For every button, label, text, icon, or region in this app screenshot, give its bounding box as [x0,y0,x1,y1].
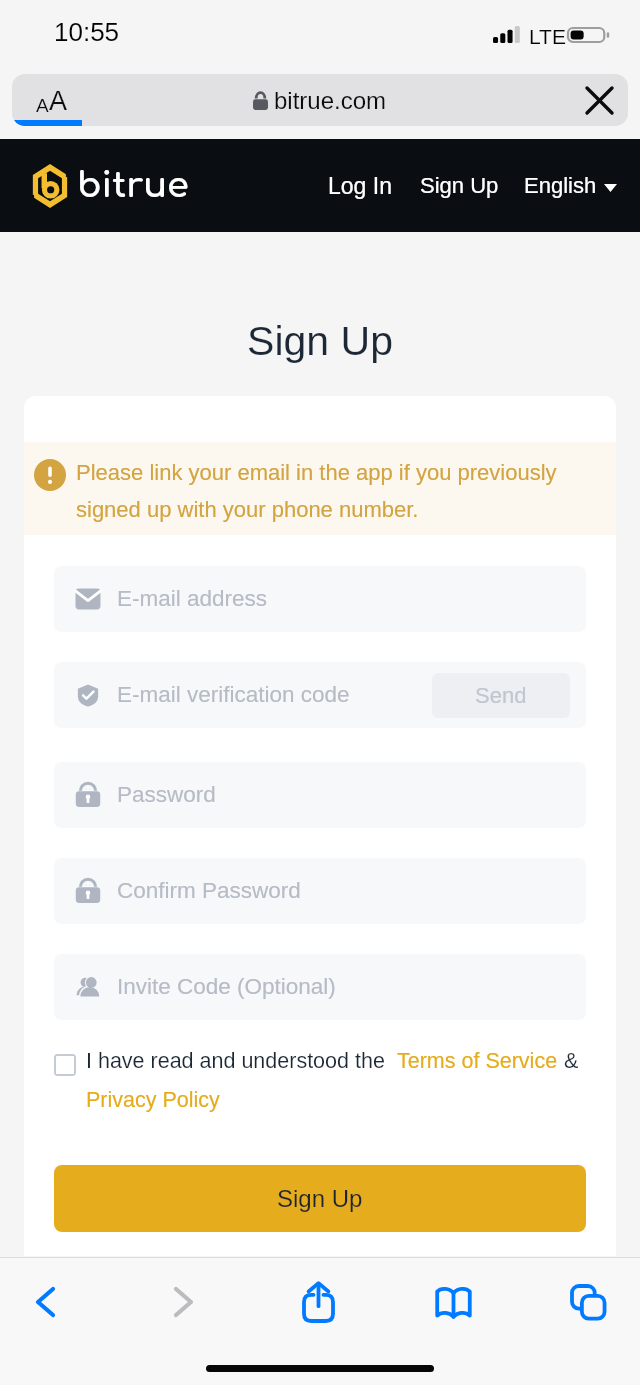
staticText: A [49,86,68,116]
button[interactable]: Confirm Password [54,858,586,924]
staticText: Terms of Service [397,1049,558,1073]
button[interactable]: Back [1,1262,89,1342]
staticText: Log In [328,173,392,199]
button[interactable]: English [514,161,627,210]
button[interactable]: A [12,74,628,126]
button[interactable]: Forward [139,1262,227,1342]
staticText: English [524,173,597,198]
button[interactable]: Bookmarks [409,1262,497,1342]
button[interactable]: Share [274,1262,362,1342]
staticText: & [564,1049,579,1073]
staticText: Privacy Policy [86,1088,220,1112]
button[interactable]: Send [432,673,570,718]
button[interactable]: Tabs [544,1262,632,1342]
staticText: I have read and understood the [86,1049,385,1073]
staticText: A [36,95,49,116]
button[interactable]: Password [54,762,586,828]
button[interactable]: Stop loading [570,74,628,126]
button[interactable]: E-mail address [54,566,586,632]
staticText: 10:55 [54,17,120,46]
staticText: Please link your email in the app if you… [76,460,586,521]
staticText: Password [117,782,216,807]
staticText: Confirm Password [117,878,301,903]
staticText: E-mail verification code [117,682,350,707]
staticText: Invite Code (Optional) [117,974,336,999]
button[interactable]: Agree to terms [54,1054,76,1076]
staticText: Sign Up [277,1185,363,1212]
staticText: Send [475,683,527,708]
staticText: LTE [529,25,566,48]
staticText: bitrue.com [274,87,387,114]
staticText: Sign Up [420,173,499,198]
button[interactable]: Log In [318,161,402,211]
staticText: Sign Up [0,318,640,364]
staticText: E-mail address [117,586,268,611]
staticText: bitrue [77,166,189,205]
button[interactable]: Privacy Policy [86,1088,220,1112]
button[interactable]: Sign Up [410,161,509,210]
button[interactable]: E-mail verification code [54,662,586,728]
button[interactable]: Sign Up [54,1165,586,1232]
button[interactable]: Terms of Service [397,1049,558,1073]
button[interactable]: Invite Code (Optional) [54,954,586,1020]
